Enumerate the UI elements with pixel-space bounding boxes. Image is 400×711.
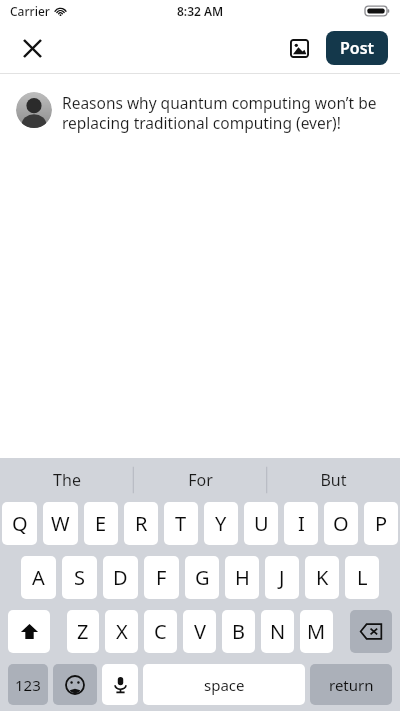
button[interactable]: R xyxy=(124,502,158,545)
button[interactable]: Close xyxy=(12,28,52,68)
button[interactable]: M xyxy=(300,610,333,653)
button[interactable]: W xyxy=(43,502,78,545)
staticText: U xyxy=(254,510,269,537)
button[interactable]: Voice input xyxy=(102,664,138,705)
staticText: T xyxy=(175,510,187,537)
staticText: space xyxy=(204,675,245,695)
button[interactable]: Z xyxy=(67,610,99,653)
staticText: The xyxy=(53,469,81,491)
button[interactable]: But xyxy=(267,458,400,502)
staticText: 8:32 AM xyxy=(177,3,224,19)
button[interactable]: 123 xyxy=(8,664,48,705)
button[interactable]: A xyxy=(21,556,56,599)
staticText: 123 xyxy=(15,675,41,695)
staticText: W xyxy=(51,510,70,537)
staticText: K xyxy=(316,564,329,591)
button[interactable]: B xyxy=(222,610,255,653)
button[interactable]: G xyxy=(185,556,219,599)
staticText: C xyxy=(154,618,167,645)
button[interactable]: return xyxy=(310,664,392,705)
button[interactable]: Emoji xyxy=(53,664,97,705)
button[interactable]: J xyxy=(265,556,299,599)
staticText: V xyxy=(194,618,206,645)
staticText: R xyxy=(135,510,148,537)
button[interactable]: X xyxy=(105,610,138,653)
button[interactable]: Post xyxy=(326,31,388,65)
button[interactable]: N xyxy=(261,610,294,653)
button[interactable]: I xyxy=(284,502,318,545)
staticText: S xyxy=(74,564,85,591)
button[interactable]: F xyxy=(144,556,179,599)
staticText: N xyxy=(270,618,286,645)
staticText: For xyxy=(188,469,213,491)
staticText: M xyxy=(307,618,326,645)
button[interactable]: E xyxy=(84,502,118,545)
button[interactable]: For xyxy=(134,458,267,502)
button[interactable]: space xyxy=(143,664,305,705)
staticText: L xyxy=(357,564,368,591)
staticText: Post xyxy=(340,37,375,59)
button[interactable]: L xyxy=(345,556,379,599)
staticText: P xyxy=(375,510,388,537)
staticText: Q xyxy=(12,510,28,537)
button[interactable]: Backspace xyxy=(350,610,392,653)
staticText: return xyxy=(329,675,374,695)
button[interactable]: C xyxy=(144,610,177,653)
button[interactable]: H xyxy=(225,556,259,599)
staticText: Reasons why quantum computing won’t be r… xyxy=(62,92,384,134)
staticText: F xyxy=(156,564,167,591)
button[interactable]: Shift xyxy=(8,610,50,653)
button[interactable]: O xyxy=(324,502,358,545)
button[interactable]: S xyxy=(62,556,97,599)
button[interactable]: P xyxy=(364,502,398,545)
button[interactable]: The xyxy=(0,458,134,502)
button[interactable]: U xyxy=(244,502,278,545)
staticText: D xyxy=(113,564,128,591)
staticText: G xyxy=(195,564,210,591)
staticText: Y xyxy=(215,510,227,537)
staticText: I xyxy=(298,510,305,537)
staticText: E xyxy=(95,510,107,537)
staticText: But xyxy=(320,469,347,491)
button[interactable]: T xyxy=(164,502,198,545)
button[interactable]: K xyxy=(305,556,339,599)
staticText: Z xyxy=(77,618,89,645)
staticText: J xyxy=(279,564,285,591)
staticText: X xyxy=(116,618,128,645)
staticText: B xyxy=(232,618,245,645)
staticText: Carrier xyxy=(10,3,50,19)
button[interactable]: Add image xyxy=(280,29,318,67)
button[interactable]: Y xyxy=(204,502,238,545)
staticText: A xyxy=(32,564,45,591)
staticText: H xyxy=(235,564,250,591)
button[interactable]: V xyxy=(183,610,216,653)
staticText: O xyxy=(333,510,349,537)
button[interactable]: Q xyxy=(2,502,37,545)
button[interactable]: D xyxy=(103,556,138,599)
